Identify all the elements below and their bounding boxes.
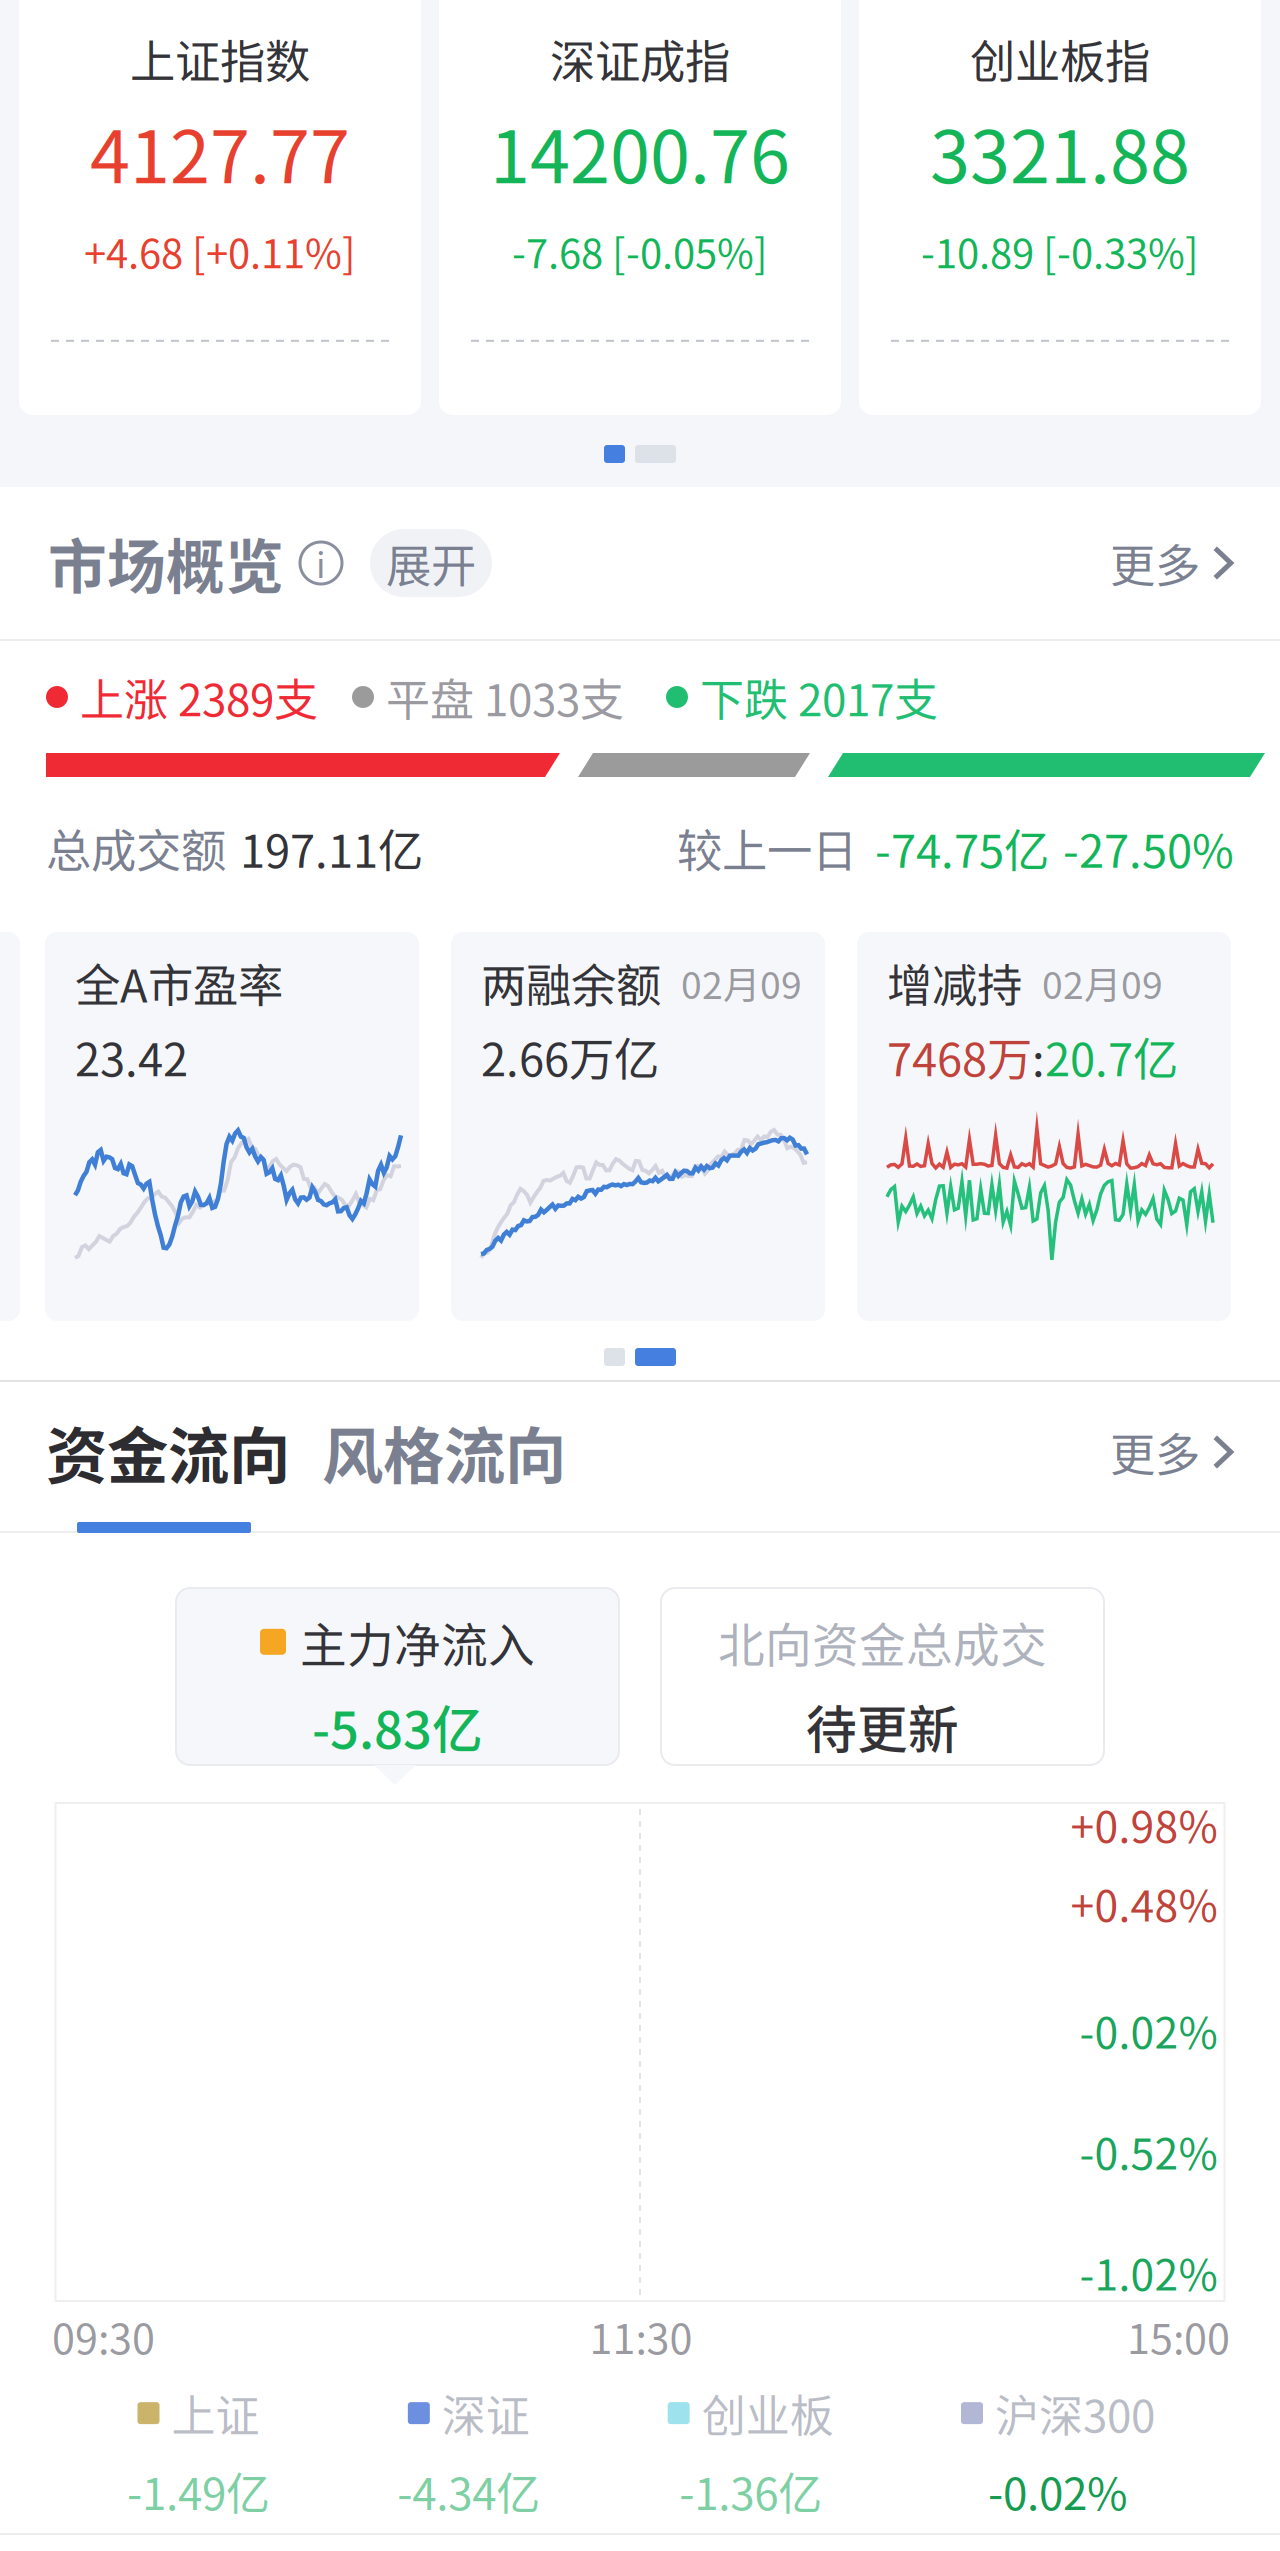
staticText: 更多 bbox=[1110, 1419, 1200, 1485]
button[interactable]: 增减持 bbox=[857, 932, 1231, 1321]
staticText: : bbox=[1032, 1024, 1045, 1089]
staticText: 展开 bbox=[386, 530, 476, 596]
staticText: 02月09 bbox=[681, 956, 802, 1010]
staticText: 2.66万亿 bbox=[481, 1024, 659, 1089]
staticText: 全A市盈率 bbox=[75, 950, 283, 1016]
staticText: -1.49亿 bbox=[127, 2459, 270, 2523]
staticText: -10.89 [-0.33%] bbox=[921, 222, 1199, 280]
staticText: 资金流向 bbox=[46, 1408, 290, 1496]
staticText: -0.52% bbox=[1079, 2120, 1217, 2182]
staticText: -1.02% bbox=[1079, 2241, 1217, 2303]
staticText: 更多 bbox=[1110, 530, 1200, 596]
staticText: 7468万 bbox=[887, 1024, 1032, 1089]
staticText: 上证指数 bbox=[130, 26, 310, 92]
staticText: 市场概览 bbox=[48, 520, 284, 605]
staticText: 09:30 bbox=[52, 2306, 155, 2366]
staticText: +0.48% bbox=[1070, 1872, 1217, 1934]
staticText: 4127.77 bbox=[90, 100, 350, 204]
button[interactable]: 深证成指 bbox=[439, 0, 841, 415]
staticText: -0.02% bbox=[988, 2459, 1128, 2523]
staticText: 上证 bbox=[171, 2381, 259, 2445]
staticText: -1.36亿 bbox=[679, 2459, 822, 2523]
staticText: 20.7亿 bbox=[1045, 1024, 1178, 1089]
staticText: 总成交额 bbox=[46, 815, 226, 881]
staticText: 风格流向 bbox=[322, 1408, 566, 1496]
staticText: 增减持 bbox=[887, 950, 1022, 1016]
button[interactable]: 更多 bbox=[1110, 518, 1236, 608]
staticText: 15:00 bbox=[1127, 2306, 1230, 2366]
staticText: 197.11亿 bbox=[240, 815, 423, 881]
staticText: 深证成指 bbox=[550, 26, 730, 92]
staticText: -74.75亿 bbox=[875, 815, 1049, 881]
button[interactable]: 更多 bbox=[1110, 1407, 1236, 1497]
staticText: 14200.76 bbox=[490, 100, 790, 204]
staticText: -0.02% bbox=[1079, 1999, 1217, 2061]
staticText: 深证 bbox=[442, 2381, 530, 2445]
staticText: +0.98% bbox=[1070, 1793, 1217, 1855]
staticText: 23.42 bbox=[75, 1024, 188, 1089]
button[interactable]: 全A市盈率 bbox=[45, 932, 419, 1321]
button[interactable]: 两融余额 bbox=[451, 932, 825, 1321]
staticText: -7.68 [-0.05%] bbox=[512, 222, 768, 280]
staticText: 创业板指 bbox=[970, 26, 1150, 92]
staticText: 11:30 bbox=[589, 2306, 692, 2366]
staticText: i bbox=[316, 538, 326, 588]
staticText: 两融余额 bbox=[481, 950, 661, 1016]
staticText: 沪深300 bbox=[995, 2381, 1155, 2445]
staticText: 下跌 2017支 bbox=[700, 665, 938, 729]
staticText: 平盘 1033支 bbox=[386, 665, 624, 729]
staticText: 创业板 bbox=[702, 2381, 834, 2445]
staticText: 主力净流入 bbox=[300, 1608, 535, 1676]
button[interactable]: 资金流向 bbox=[46, 1408, 290, 1496]
staticText: 02月09 bbox=[1042, 956, 1163, 1010]
button[interactable]: 市场概览 bbox=[48, 520, 344, 605]
staticText: 北向资金总成交 bbox=[718, 1608, 1047, 1676]
button[interactable]: 展开 bbox=[370, 529, 492, 597]
staticText: 3321.88 bbox=[930, 100, 1190, 204]
button[interactable]: 上证指数 bbox=[19, 0, 421, 415]
staticText: -4.34亿 bbox=[397, 2459, 540, 2523]
staticText: 待更新 bbox=[806, 1690, 959, 1763]
staticText: +4.68 [+0.11%] bbox=[84, 222, 356, 280]
button[interactable]: 北向资金总成交 bbox=[661, 1588, 1104, 1765]
staticText: 上涨 2389支 bbox=[80, 665, 318, 729]
button[interactable]: 风格流向 bbox=[322, 1408, 566, 1496]
staticText: 较上一日 bbox=[677, 815, 857, 881]
button[interactable]: 主力净流入 bbox=[176, 1588, 619, 1765]
staticText: -27.50% bbox=[1063, 815, 1234, 881]
staticText: -5.83亿 bbox=[312, 1690, 483, 1763]
button[interactable]: 创业板指 bbox=[859, 0, 1261, 415]
